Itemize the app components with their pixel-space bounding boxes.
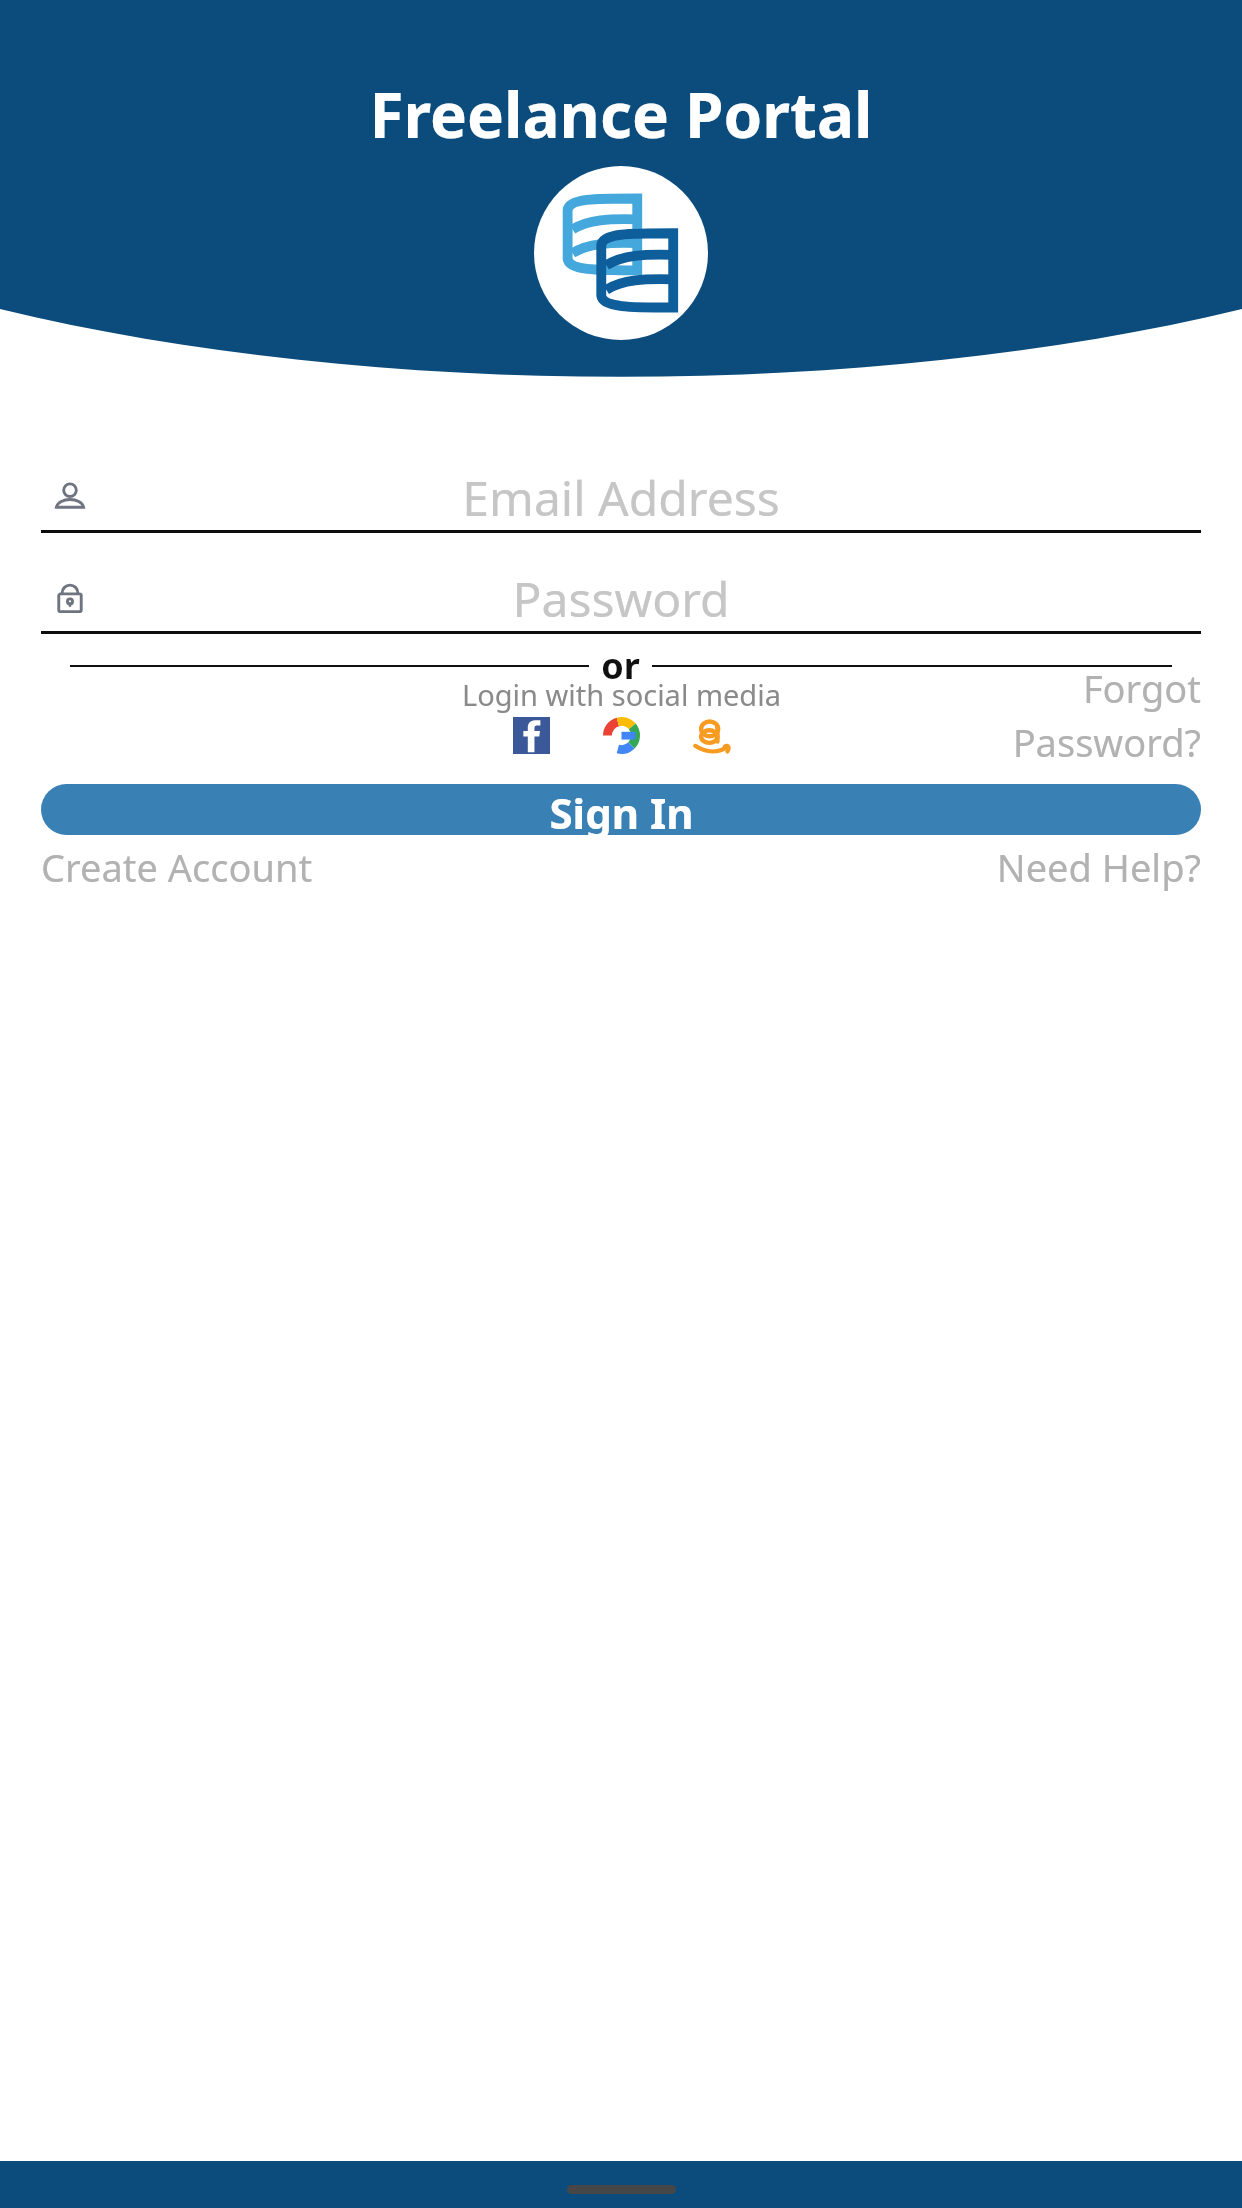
button[interactable]: Need Help? [621, 841, 1201, 893]
button[interactable]: Sign In [41, 784, 1201, 835]
staticText: Freelance Portal [369, 72, 873, 156]
staticText: Password? [1012, 716, 1201, 768]
staticText: Sign In [549, 784, 694, 835]
button[interactable]: Login with Google [603, 717, 640, 754]
other: Email Address [53, 480, 87, 514]
staticText: Need Help? [996, 841, 1201, 893]
button[interactable]: Login with Amazon [693, 717, 730, 754]
button[interactable]: Email Address [41, 464, 1201, 533]
staticText: or [601, 641, 640, 690]
other: Password [53, 581, 87, 615]
staticText: Forgot [1082, 662, 1201, 714]
staticText: Password [512, 566, 730, 631]
button[interactable]: Forgot [41, 662, 1201, 768]
staticText: Login with social media [462, 675, 781, 714]
staticText: Create Account [41, 841, 313, 893]
button[interactable]: Password [41, 565, 1201, 634]
button[interactable]: Login with Facebook [513, 717, 550, 754]
staticText: Email Address [462, 465, 780, 530]
button[interactable]: Create Account [41, 841, 621, 893]
